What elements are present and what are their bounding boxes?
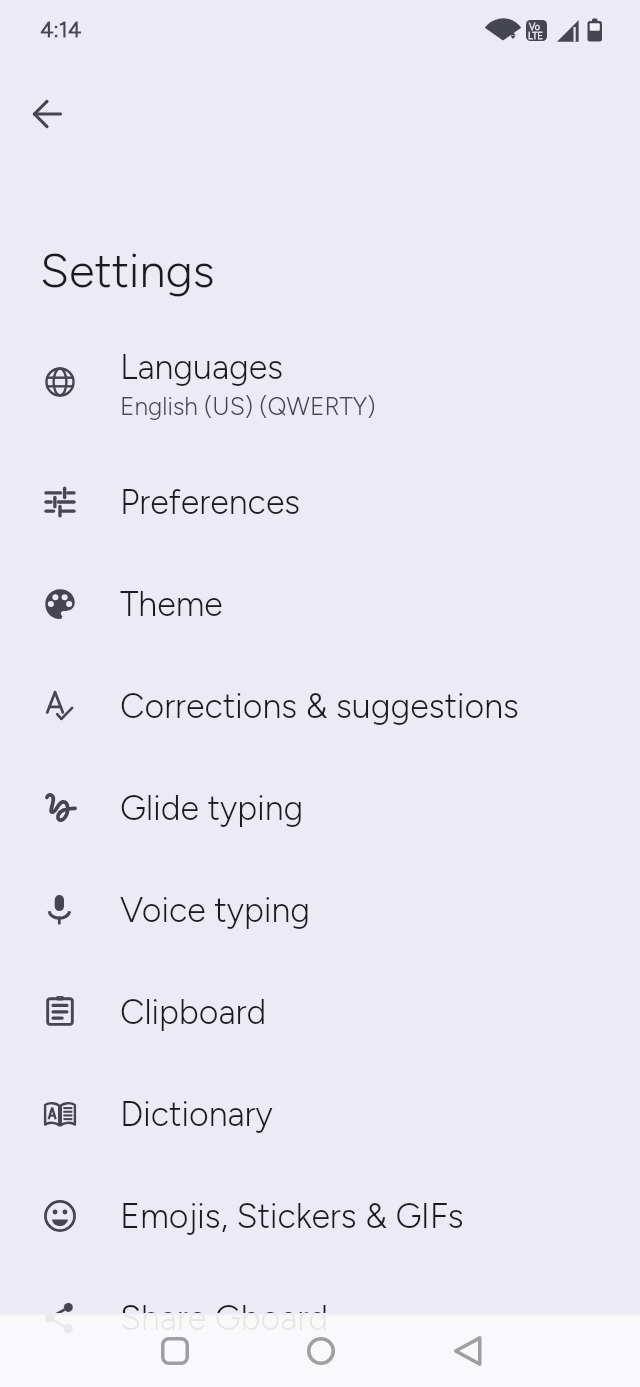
staticText: Emojis, Stickers & GIFs: [120, 1196, 464, 1237]
staticText: Dictionary: [120, 1094, 273, 1135]
button[interactable]: Emojis, Stickers & GIFs: [0, 1165, 640, 1267]
button[interactable]: Recent apps: [143, 1319, 207, 1383]
staticText: Voice typing: [120, 890, 311, 931]
staticText: Corrections & suggestions: [120, 686, 519, 727]
button[interactable]: Languages: [0, 313, 640, 451]
button[interactable]: Corrections & suggestions: [0, 655, 640, 757]
button[interactable]: Home: [289, 1319, 353, 1383]
staticText: English (US) (QWERTY): [120, 392, 376, 421]
button[interactable]: Preferences: [0, 451, 640, 553]
staticText: Vo: [529, 21, 540, 32]
button[interactable]: Theme: [0, 553, 640, 655]
button[interactable]: Back: [19, 86, 75, 142]
button[interactable]: Glide typing: [0, 757, 640, 859]
staticText: Glide typing: [120, 788, 304, 829]
staticText: Share Gboard: [120, 1298, 329, 1339]
staticText: 4:14: [40, 16, 82, 42]
button[interactable]: Back: [436, 1319, 500, 1383]
button[interactable]: Share Gboard: [0, 1267, 640, 1369]
staticText: Settings: [40, 242, 215, 298]
staticText: LTE: [528, 30, 543, 41]
button[interactable]: Clipboard: [0, 961, 640, 1063]
staticText: Theme: [120, 584, 223, 625]
staticText: Preferences: [120, 482, 301, 523]
button[interactable]: Voice typing: [0, 859, 640, 961]
button[interactable]: Dictionary: [0, 1063, 640, 1165]
staticText: Languages: [120, 347, 284, 388]
staticText: Clipboard: [120, 992, 267, 1033]
